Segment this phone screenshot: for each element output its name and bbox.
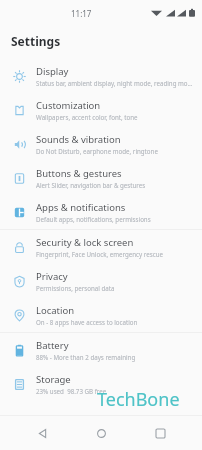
staticText: Alert Slider, navigation bar & gestures <box>36 181 146 189</box>
staticText: Permissions, personal data <box>36 284 115 292</box>
staticText: 88% - More than 2 days remaining <box>36 353 136 361</box>
staticText: Apps & notifications <box>36 201 126 214</box>
button[interactable]: Apps & notifications <box>0 195 202 229</box>
staticText: Storage <box>36 373 71 386</box>
button[interactable]: Display <box>0 59 202 93</box>
staticText: Settings <box>11 33 61 49</box>
staticText: Do Not Disturb, earphone mode, ringtone <box>36 147 158 155</box>
button[interactable]: Customization <box>0 93 202 127</box>
staticText: Display <box>36 65 69 78</box>
staticText: 11:17 <box>71 8 92 19</box>
button[interactable]: Privacy <box>0 264 202 298</box>
button[interactable]: Storage <box>0 367 202 401</box>
staticText: Status bar, ambient display, night mode,… <box>36 79 194 87</box>
button[interactable]: Battery <box>0 333 202 367</box>
button[interactable]: Buttons & gestures <box>0 161 202 195</box>
staticText: Buttons & gestures <box>36 167 122 180</box>
staticText: Customization <box>36 99 101 112</box>
button[interactable]: Back <box>25 416 59 450</box>
staticText: On - 8 apps have access to location <box>36 318 138 326</box>
staticText: 23% used 98.73 GB free <box>36 387 107 395</box>
button[interactable]: Security & lock screen <box>0 230 202 264</box>
staticText: Location <box>36 304 75 317</box>
staticText: TechBone <box>97 387 180 412</box>
staticText: Fingerprint, Face Unlock, emergency resc… <box>36 250 164 258</box>
staticText: Battery <box>36 339 69 352</box>
staticText: Privacy <box>36 270 68 283</box>
button[interactable]: Sounds & vibration <box>0 127 202 161</box>
button[interactable]: Recent apps <box>143 416 177 450</box>
staticText: Sounds & vibration <box>36 133 121 146</box>
staticText: Default apps, notifications, permissions <box>36 215 151 223</box>
button[interactable]: Location <box>0 298 202 332</box>
staticText: Wallpapers, accent color, font, tone <box>36 113 138 121</box>
button[interactable]: Home <box>84 416 118 450</box>
staticText: Security & lock screen <box>36 236 134 249</box>
